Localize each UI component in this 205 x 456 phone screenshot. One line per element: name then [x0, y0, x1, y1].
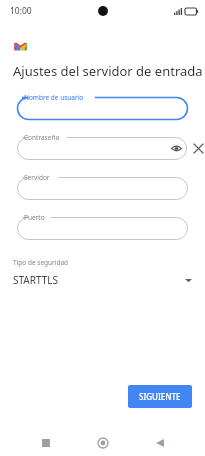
staticText: SIGUIENTE: [139, 391, 181, 402]
button[interactable]: Inicio: [74, 430, 131, 456]
button[interactable]: Tipo de seguridad: [13, 258, 192, 287]
button[interactable]: Recientes: [17, 430, 74, 456]
staticText: Tipo de seguridad: [13, 258, 69, 267]
staticText: Nombre de usuario: [24, 93, 84, 102]
staticText: STARTTLS: [13, 273, 59, 287]
button[interactable]: Borrar: [191, 133, 205, 164]
staticText: 10:00: [10, 5, 32, 17]
button[interactable]: Atrás: [131, 430, 188, 456]
button[interactable]: SIGUIENTE: [128, 385, 192, 408]
button[interactable]: Nombre de usuario: [13, 93, 192, 124]
staticText: Puerto: [24, 213, 45, 222]
staticText: Servidor: [24, 173, 50, 182]
staticText: Ajustes del servidor de entrada: [13, 62, 203, 80]
button[interactable]: Contraseña: [13, 133, 191, 164]
button[interactable]: Servidor: [13, 173, 192, 204]
button[interactable]: Puerto: [13, 213, 192, 244]
staticText: Contraseña: [24, 133, 60, 142]
button[interactable]: Mostrar contraseña: [170, 142, 183, 155]
